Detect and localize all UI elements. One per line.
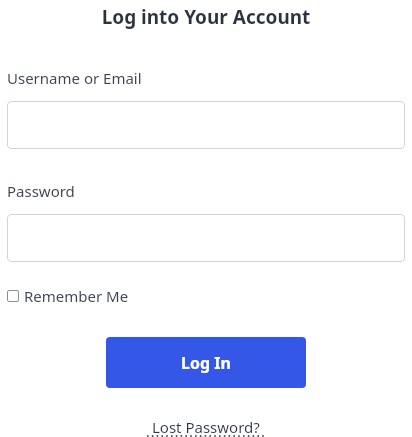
staticText: Remember Me xyxy=(24,286,129,306)
button[interactable]: Text input field xyxy=(7,214,405,262)
button[interactable]: Log In xyxy=(106,337,306,388)
staticText: Log into Your Account xyxy=(0,4,412,30)
button[interactable]: Lost Password? xyxy=(147,417,265,437)
staticText: Password xyxy=(7,181,75,201)
staticText: Username or Email xyxy=(7,68,142,88)
button[interactable]: Remember Me xyxy=(7,286,129,306)
staticText: Lost Password? xyxy=(152,417,260,437)
staticText: Log In xyxy=(181,352,231,374)
button[interactable]: Text input field xyxy=(7,101,405,149)
